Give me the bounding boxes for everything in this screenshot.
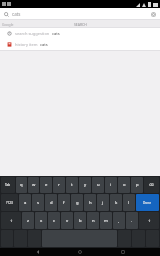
button[interactable]: g	[71, 194, 83, 211]
button[interactable]: Done	[136, 194, 159, 211]
staticText: l	[128, 200, 130, 206]
staticText: x	[40, 218, 43, 224]
staticText: z	[27, 218, 29, 224]
button[interactable]: a	[19, 194, 31, 211]
button[interactable]: m	[100, 212, 112, 229]
staticText: k	[115, 200, 118, 206]
button[interactable]: Recent apps	[118, 248, 128, 256]
staticText: cats	[40, 42, 48, 47]
button[interactable]: x	[35, 212, 47, 229]
staticText: cats	[52, 31, 60, 36]
staticText: y	[84, 182, 87, 188]
button[interactable]: l	[123, 194, 135, 211]
button[interactable]: Tab	[1, 177, 15, 193]
staticText: u	[97, 182, 100, 188]
staticText: j	[102, 200, 104, 206]
staticText: g	[76, 200, 79, 206]
staticText: s	[37, 200, 40, 206]
button[interactable]: y	[79, 177, 91, 193]
button[interactable]: v	[61, 212, 73, 229]
button[interactable]: ⌫	[144, 177, 159, 193]
staticText: n	[92, 218, 95, 224]
other: Search	[4, 12, 9, 17]
button[interactable]: s	[32, 194, 44, 211]
staticText: Tab	[5, 183, 11, 187]
staticText: b	[79, 218, 82, 224]
button[interactable]: Home	[75, 248, 85, 256]
staticText: Google	[2, 22, 14, 27]
button[interactable]: b	[74, 212, 86, 229]
staticText: c	[53, 218, 56, 224]
staticText: q	[20, 182, 23, 188]
button[interactable]: ,	[113, 212, 125, 229]
button[interactable]: Back	[33, 248, 43, 256]
staticText: m	[104, 218, 108, 224]
button[interactable]: search suggestion	[0, 28, 160, 39]
staticText: d	[50, 200, 53, 206]
button[interactable]: n	[87, 212, 99, 229]
staticText: w	[32, 182, 36, 188]
staticText: e	[45, 182, 48, 188]
button[interactable]: k	[110, 194, 122, 211]
staticText: i	[110, 182, 112, 188]
staticText: SEARCH	[74, 22, 87, 27]
staticText: ⌫	[149, 183, 154, 187]
button[interactable]: ⇧	[139, 212, 159, 229]
button[interactable]: o	[118, 177, 130, 193]
button[interactable]: i	[105, 177, 117, 193]
button[interactable]: d	[45, 194, 57, 211]
staticText: p	[136, 182, 139, 188]
button[interactable]: z	[22, 212, 34, 229]
staticText: r	[58, 182, 60, 188]
button[interactable]: t	[66, 177, 78, 193]
button[interactable]: j	[97, 194, 109, 211]
button[interactable]: p	[131, 177, 143, 193]
button[interactable]: q	[16, 177, 27, 193]
button[interactable]: h	[84, 194, 96, 211]
button[interactable]: w	[28, 177, 39, 193]
staticText: t	[71, 182, 73, 188]
staticText: o	[123, 182, 126, 188]
staticText: a	[24, 200, 27, 206]
button[interactable]: u	[92, 177, 104, 193]
button[interactable]: Search	[0, 8, 160, 20]
button[interactable]: .	[126, 212, 138, 229]
staticText: ⇧	[10, 219, 13, 223]
staticText: cats	[12, 11, 21, 17]
button[interactable]: c	[48, 212, 60, 229]
button[interactable]: Clear search	[150, 11, 156, 17]
staticText: Done	[143, 201, 152, 205]
staticText: h	[89, 200, 92, 206]
button[interactable]: ?123	[1, 194, 18, 211]
staticText: search suggestion	[15, 31, 50, 36]
staticText: ⇧	[148, 219, 151, 223]
button[interactable]: ⇧	[1, 212, 21, 229]
staticText: ?123	[6, 201, 13, 205]
button[interactable]: f	[58, 194, 70, 211]
staticText: f	[63, 200, 65, 206]
button[interactable]: r	[53, 177, 65, 193]
button[interactable]: e	[40, 177, 52, 193]
staticText: ,	[118, 218, 120, 224]
staticText: history item	[15, 42, 38, 47]
staticText: v	[66, 218, 69, 224]
staticText: .	[131, 218, 133, 224]
button[interactable]: history item	[0, 39, 160, 50]
